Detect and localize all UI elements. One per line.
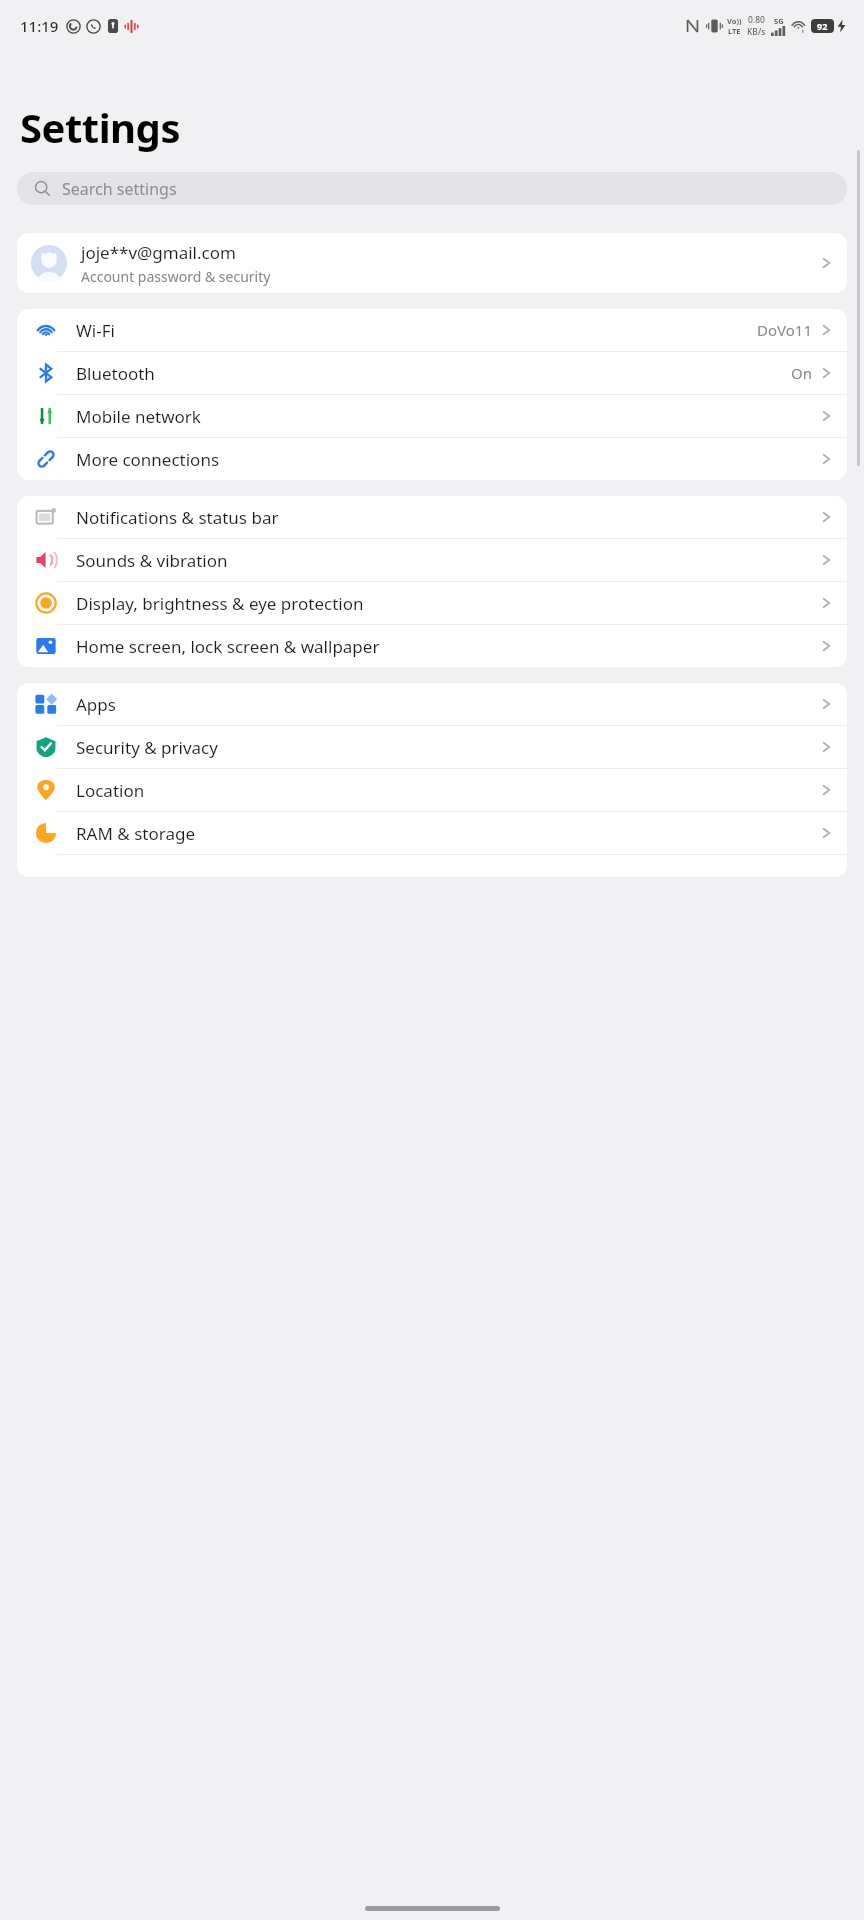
staticText: Search settings bbox=[62, 178, 177, 200]
button[interactable]: Wi-Fi bbox=[17, 309, 847, 351]
button[interactable]: Search settings bbox=[17, 172, 847, 205]
staticText: Bluetooth bbox=[76, 362, 791, 385]
button[interactable]: Mobile network bbox=[17, 395, 847, 437]
staticText: On bbox=[791, 363, 812, 383]
staticText: Home screen, lock screen & wallpaper bbox=[76, 635, 822, 658]
staticText: Settings bbox=[20, 100, 180, 154]
button[interactable]: Location bbox=[17, 769, 847, 811]
staticText: Notifications & status bar bbox=[76, 506, 822, 529]
button[interactable]: Display, brightness & eye protection bbox=[17, 582, 847, 624]
staticText: 0.80 bbox=[748, 14, 765, 26]
staticText: Location bbox=[76, 779, 822, 802]
staticText: Account password & security bbox=[81, 267, 271, 286]
staticText: Security & privacy bbox=[76, 736, 822, 759]
button[interactable]: Sounds & vibration bbox=[17, 539, 847, 581]
button[interactable]: Security & privacy bbox=[17, 726, 847, 768]
staticText: Mobile network bbox=[76, 405, 822, 428]
staticText: More connections bbox=[76, 448, 822, 471]
staticText: Display, brightness & eye protection bbox=[76, 592, 822, 615]
staticText: Apps bbox=[76, 693, 822, 716]
button[interactable]: Apps bbox=[17, 683, 847, 725]
staticText: KB/s bbox=[747, 26, 766, 38]
staticText: joje**v@gmail.com bbox=[81, 241, 236, 264]
button[interactable]: Bluetooth bbox=[17, 352, 847, 394]
button[interactable]: Notifications & status bar bbox=[17, 496, 847, 538]
staticText: RAM & storage bbox=[76, 822, 822, 845]
staticText: Sounds & vibration bbox=[76, 549, 822, 572]
button[interactable]: More connections bbox=[17, 438, 847, 480]
staticText: Wi-Fi bbox=[76, 319, 757, 342]
staticText: Vo)) bbox=[727, 16, 742, 26]
button[interactable]: Home screen, lock screen & wallpaper bbox=[17, 625, 847, 667]
button[interactable]: joje**v@gmail.com bbox=[17, 233, 847, 293]
staticText: 11:19 bbox=[20, 16, 59, 36]
button[interactable]: RAM & storage bbox=[17, 812, 847, 854]
staticText: DoVo11 bbox=[757, 320, 812, 340]
staticText: 5G bbox=[774, 16, 784, 26]
staticText: 92 bbox=[817, 20, 828, 32]
staticText: LTE bbox=[728, 26, 741, 36]
